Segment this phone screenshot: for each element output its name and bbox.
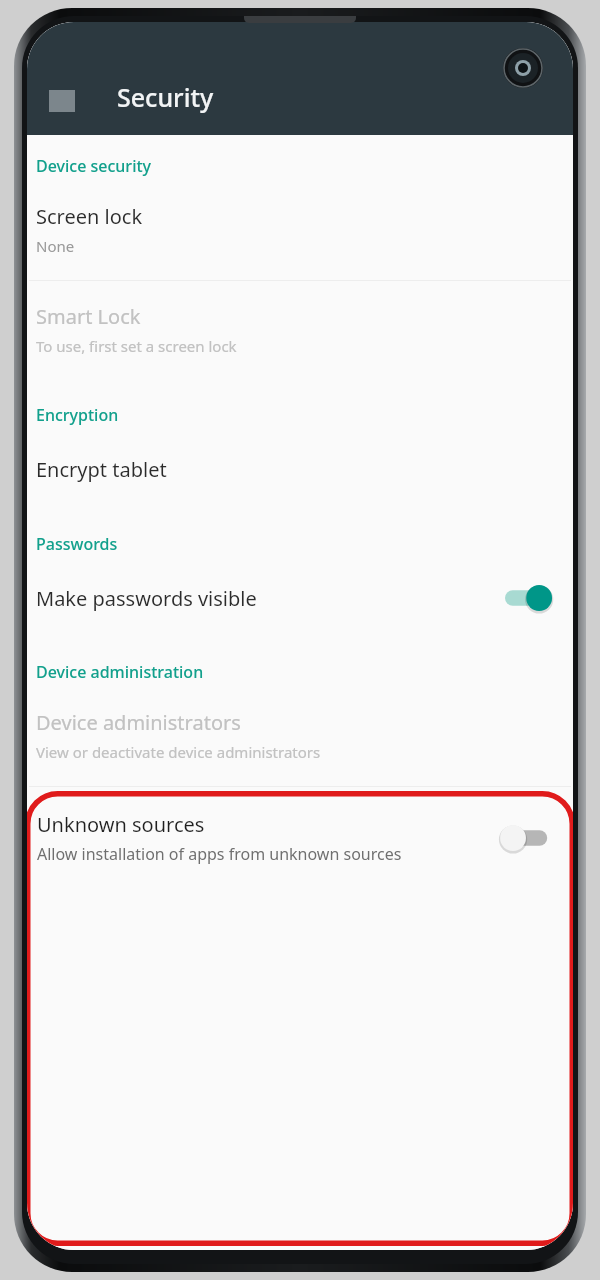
button[interactable]: Unknown sources [28,791,572,887]
button[interactable]: Toggle off [504,821,558,855]
staticText: Encryption [36,404,119,426]
staticText: Security [117,80,214,114]
staticText: Screen lock [36,203,143,230]
staticText: Passwords [36,533,118,555]
button[interactable]: Screen lock [27,181,573,280]
staticText: Unknown sources [37,811,205,838]
staticText: Smart Lock [36,303,141,330]
button[interactable]: Navigation menu [40,79,84,123]
button[interactable]: Smart Lock [27,281,573,380]
button[interactable]: Device administrators [27,687,573,786]
staticText: Device security [36,155,152,177]
staticText: To use, first set a screen lock [36,336,237,356]
staticText: Allow installation of apps from unknown … [37,843,402,865]
button[interactable]: Toggle on [505,581,559,615]
staticText: Make passwords visible [36,585,257,612]
staticText: Encrypt tablet [36,456,167,483]
staticText: Device administrators [36,709,241,736]
staticText: None [36,236,75,256]
staticText: View or deactivate device administrators [36,742,321,762]
button[interactable]: Encrypt tablet [27,430,573,511]
staticText: Device administration [36,661,204,683]
button[interactable]: Make passwords visible [27,559,573,639]
